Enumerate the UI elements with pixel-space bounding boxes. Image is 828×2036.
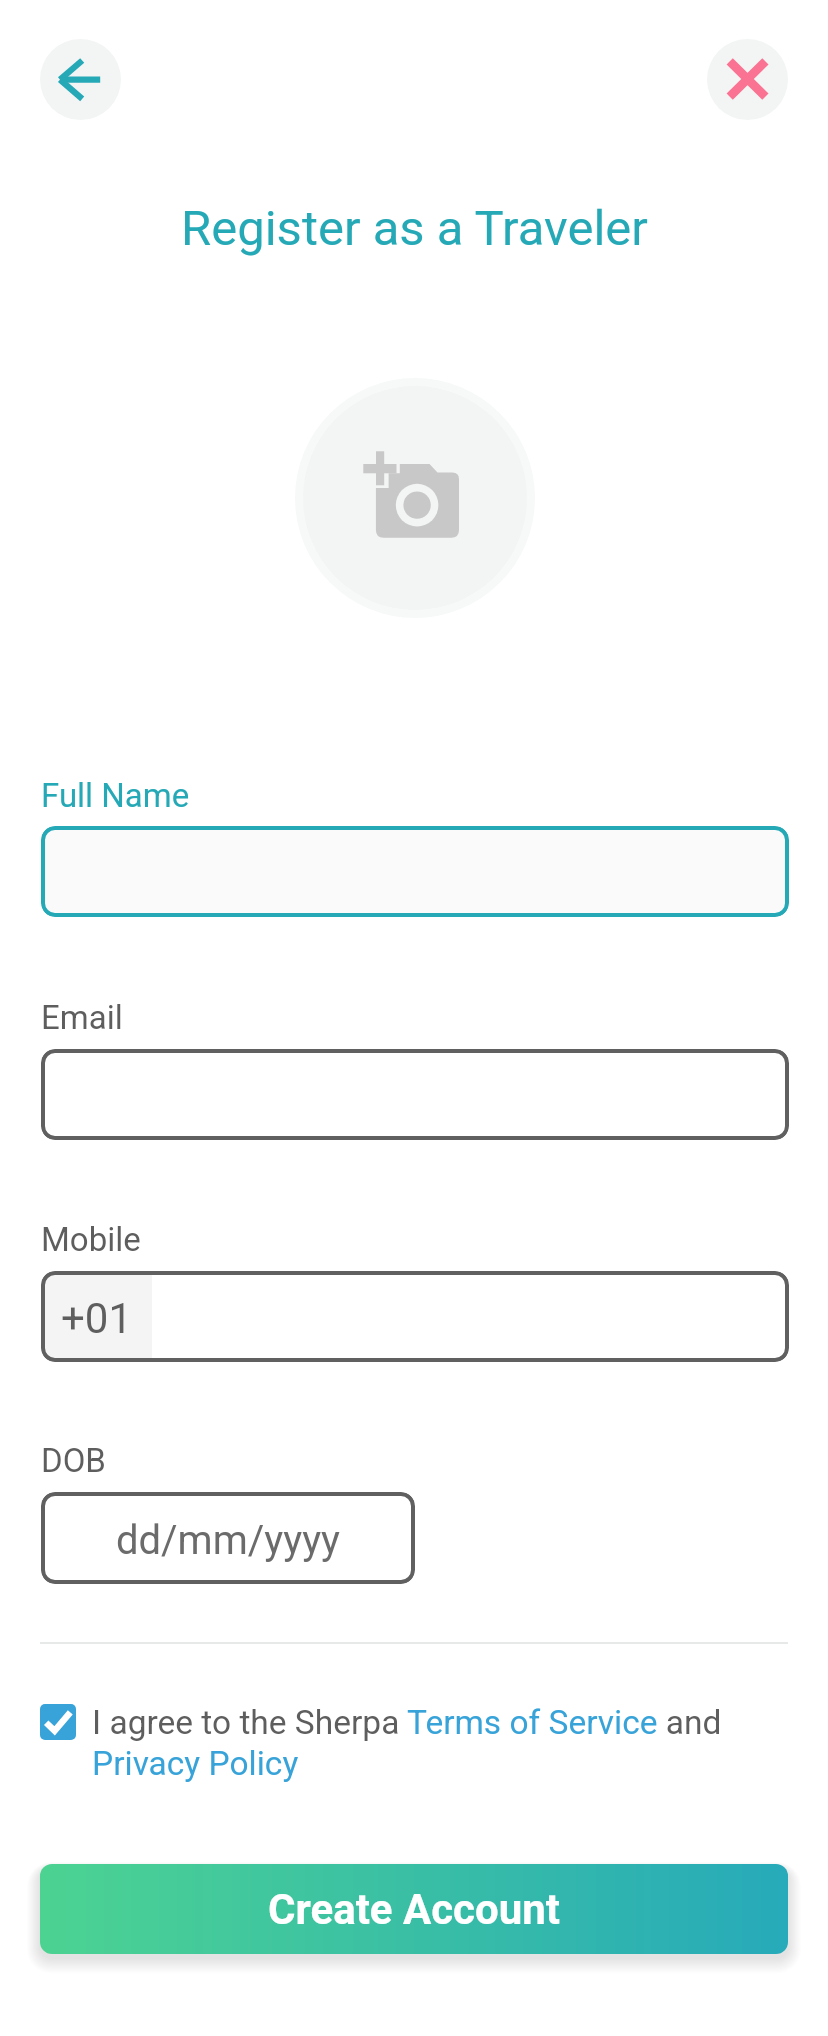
button[interactable]: Close [707,39,788,120]
staticText: Mobile [41,1220,141,1259]
staticText: Create Account [268,1885,560,1934]
staticText: +01 [61,1294,133,1343]
button[interactable]: Back [40,39,121,120]
button[interactable]: Add photo [295,378,535,618]
staticText: I agree to the Sherpa Terms of Service a… [92,1703,788,1784]
staticText: DOB [41,1441,106,1480]
staticText: Email [41,998,123,1037]
button[interactable] [41,1049,789,1140]
staticText: dd/mm/yyyy [116,1517,340,1564]
button[interactable]: Agree to terms [40,1704,76,1740]
button[interactable]: +01 [41,1271,789,1362]
button[interactable]: I agree to the Sherpa Terms of Service a… [92,1703,788,1784]
button[interactable] [41,826,789,917]
button[interactable]: dd/mm/yyyy [41,1492,415,1584]
staticText: Register as a Traveler [181,200,648,257]
button[interactable]: Create Account [40,1864,788,1954]
staticText: Full Name [41,776,190,815]
